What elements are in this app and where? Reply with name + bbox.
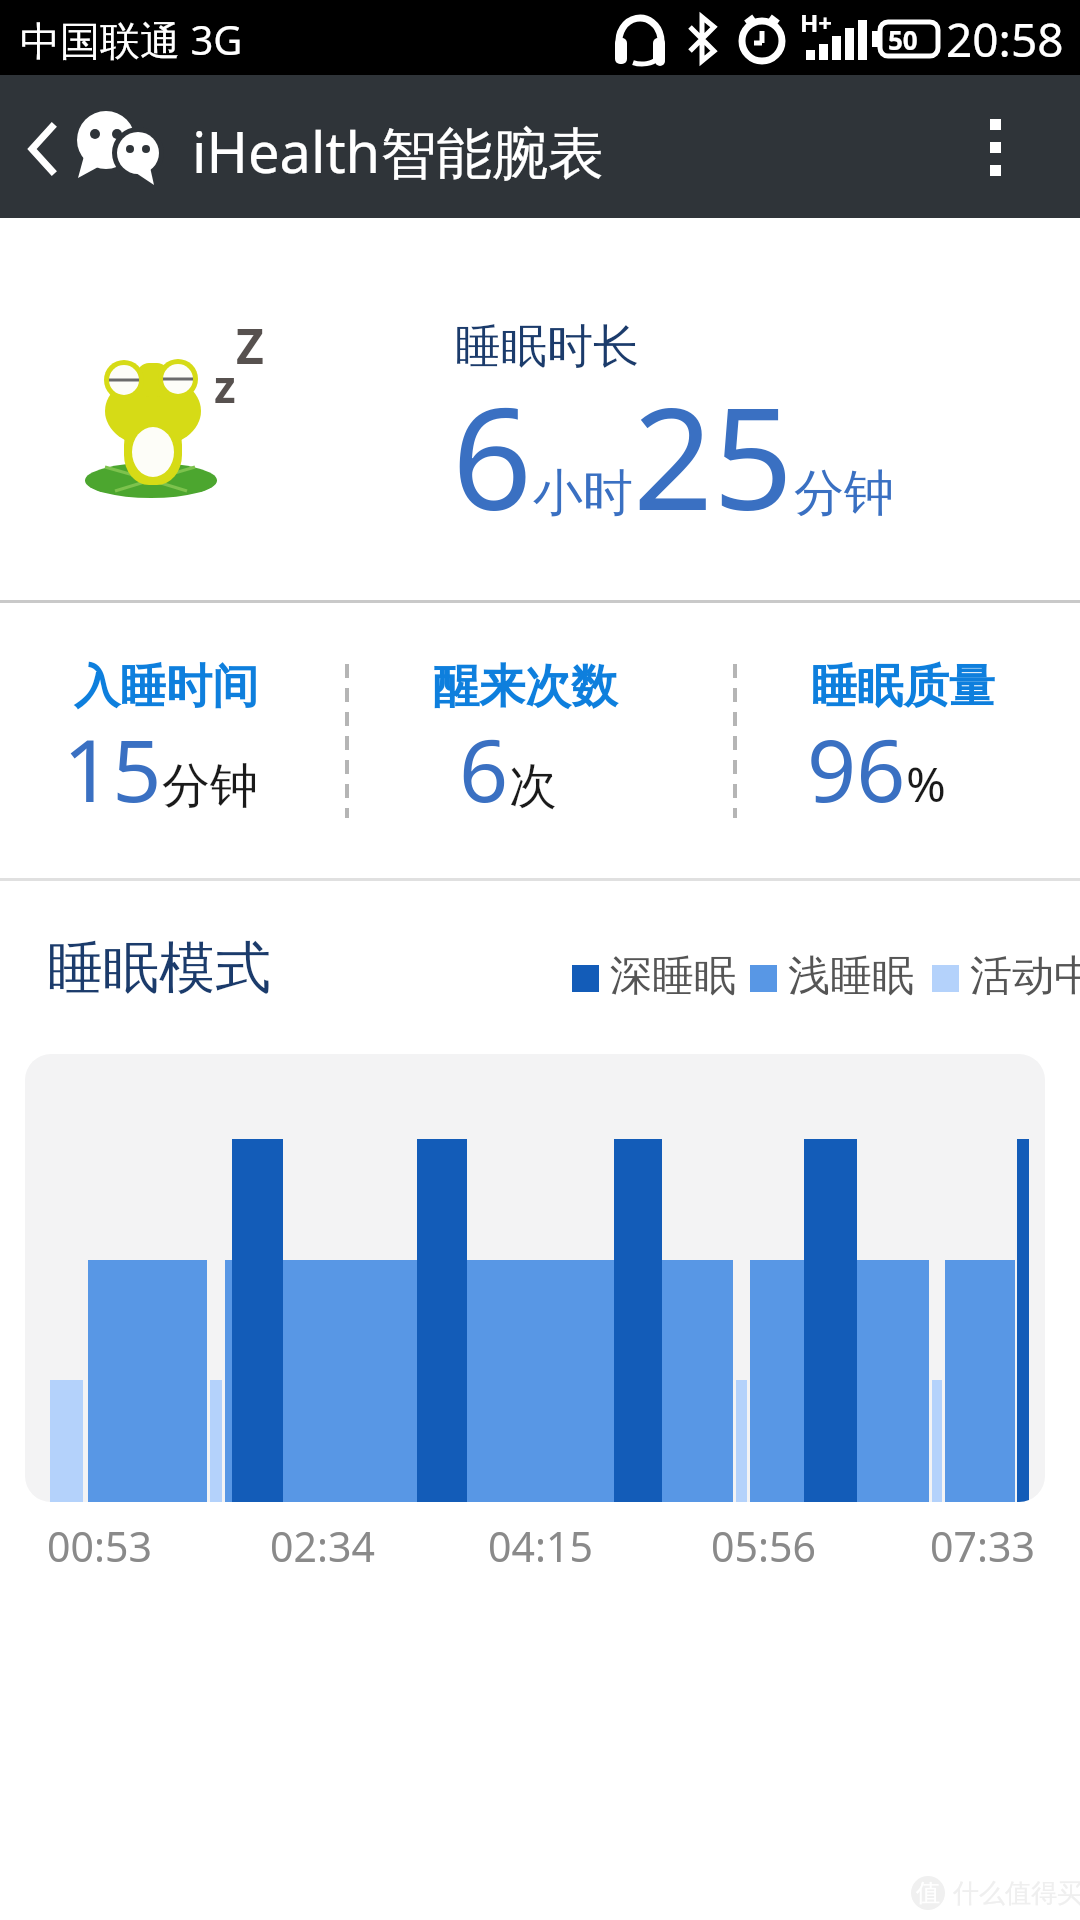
staticText: 6: [452, 360, 533, 551]
staticText: 02:34: [270, 1518, 375, 1574]
button[interactable]: [0, 75, 180, 218]
staticText: %: [906, 751, 946, 816]
staticText: 分钟: [162, 756, 258, 816]
staticText: 入睡时间: [74, 658, 258, 716]
staticText: 分钟: [794, 462, 894, 525]
staticText: 次: [509, 756, 557, 816]
staticText: 深睡眠: [610, 950, 736, 1003]
staticText: 04:15: [488, 1518, 593, 1574]
staticText: 小时: [533, 462, 633, 525]
staticText: 睡眠模式: [47, 933, 271, 1004]
staticText: 睡眠质量: [811, 658, 995, 716]
button[interactable]: [960, 95, 1030, 198]
staticText: 20:58: [946, 8, 1064, 71]
staticText: 6: [459, 710, 509, 827]
staticText: H+: [800, 6, 833, 39]
staticText: 50: [888, 22, 918, 57]
staticText: 什么值得买: [953, 1877, 1080, 1910]
staticText: 值: [916, 1878, 940, 1908]
staticText: 睡眠时长: [455, 318, 639, 376]
staticText: z: [214, 356, 236, 416]
staticText: 浅睡眠: [788, 950, 914, 1003]
staticText: 15: [63, 710, 162, 827]
staticText: Z: [236, 313, 264, 378]
staticText: 96: [807, 710, 906, 827]
staticText: 00:53: [47, 1518, 152, 1574]
staticText: 活动中: [970, 950, 1080, 1003]
staticText: iHealth智能腕表: [192, 113, 605, 189]
staticText: 05:56: [711, 1518, 816, 1574]
staticText: 中国联通 3G: [20, 12, 243, 67]
staticText: 25: [633, 360, 794, 551]
staticText: 醒来次数: [433, 658, 617, 716]
staticText: 07:33: [930, 1518, 1035, 1574]
